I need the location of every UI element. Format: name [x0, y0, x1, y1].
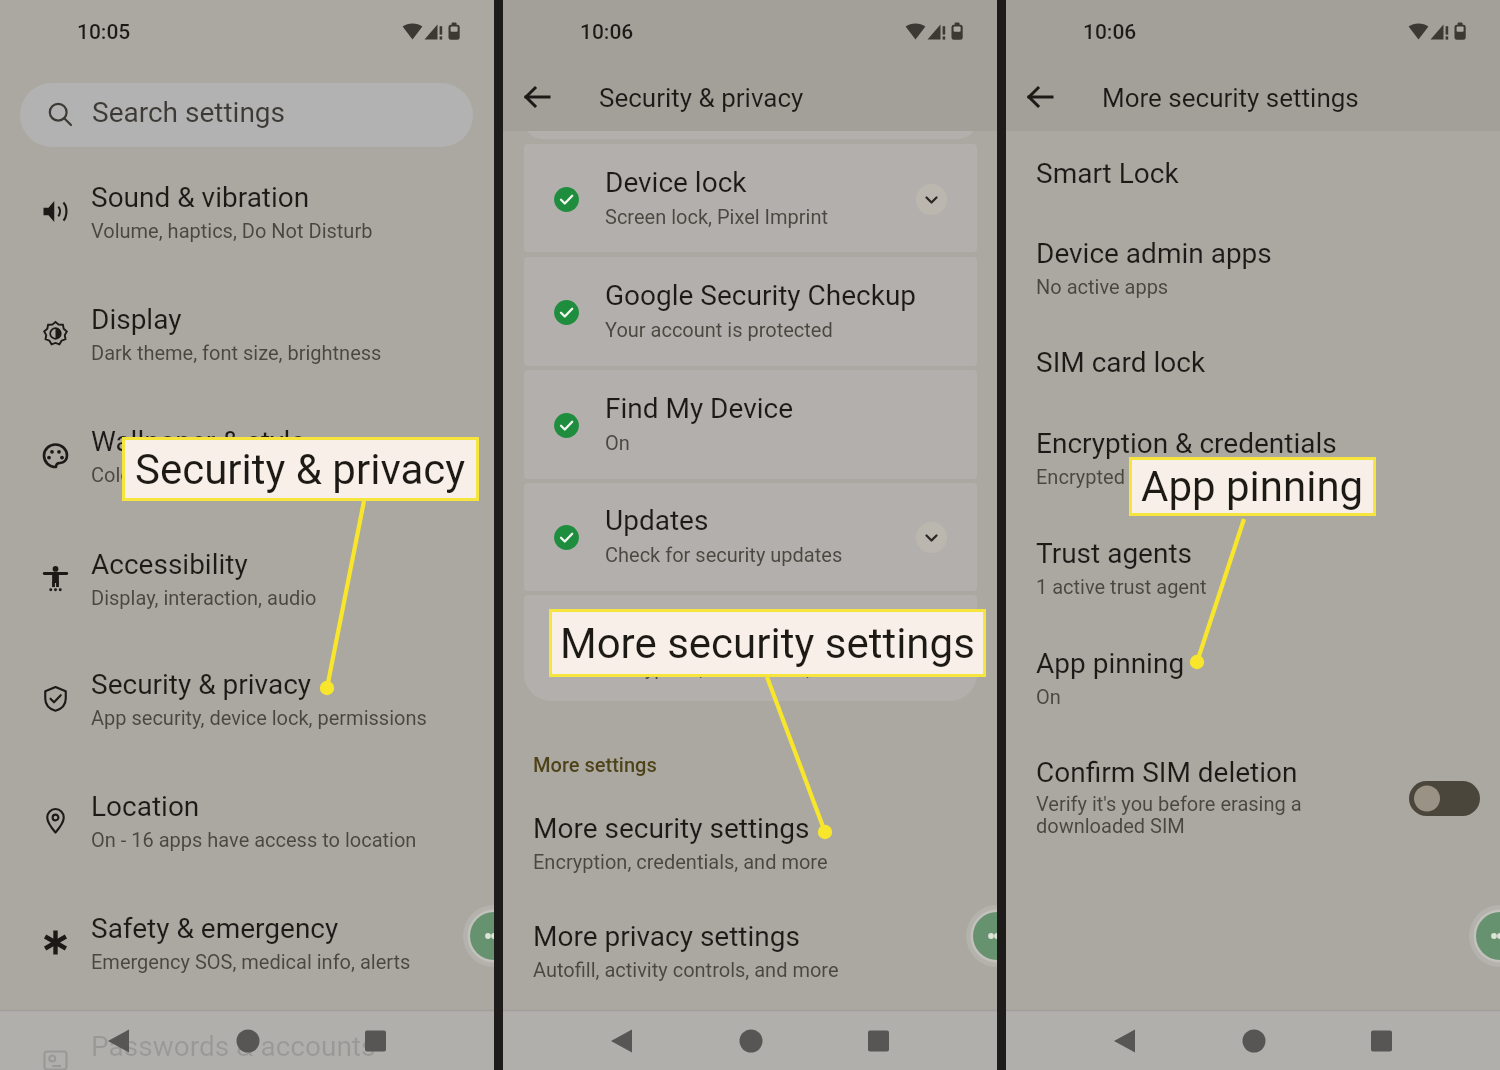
staticText: SIM card lock — [1036, 346, 1206, 379]
button[interactable]: Find My Device — [524, 370, 977, 479]
staticText: More security settings — [1102, 83, 1359, 113]
staticText: Confirm SIM deletion — [1036, 756, 1298, 789]
button[interactable]: Expand — [916, 522, 947, 553]
staticText: Encrypted — [1036, 465, 1125, 488]
staticText: Passwords & accounts — [91, 1030, 376, 1063]
staticText: Check for security updates — [605, 543, 843, 566]
button[interactable]: Device lock — [524, 144, 977, 252]
button[interactable]: Recent apps — [351, 1017, 399, 1065]
staticText: Security & privacy — [91, 668, 312, 701]
staticText: Encryption & credentials — [1036, 427, 1337, 460]
button[interactable]: Home — [224, 1017, 272, 1065]
button[interactable]: More privacy settings — [503, 894, 997, 1003]
staticText: Smart Lock — [1036, 157, 1179, 190]
button[interactable]: Recent apps — [1357, 1017, 1405, 1065]
staticText: Colors, themed icons, app grid — [91, 463, 360, 486]
button[interactable]: App pinning — [1006, 621, 1500, 726]
staticText: Your account is protected — [605, 318, 833, 341]
button[interactable]: Home — [727, 1017, 775, 1065]
button[interactable]: Trust agents — [1006, 511, 1500, 616]
staticText: Device lock — [605, 166, 747, 199]
button[interactable]: Accessibility — [0, 522, 494, 634]
button[interactable]: Display — [0, 277, 494, 389]
staticText: App pinning — [1036, 647, 1185, 680]
staticText: Security & privacy — [135, 445, 466, 494]
button[interactable]: More options — [460, 902, 494, 970]
staticText: Google Security Checkup — [605, 279, 917, 312]
staticText: 10:05 — [77, 20, 131, 45]
staticText: Sound & vibration — [91, 181, 310, 214]
button[interactable]: Sound & vibration — [0, 155, 494, 267]
staticText: Accessibility — [91, 548, 248, 581]
staticText: Display — [91, 303, 182, 336]
button[interactable]: Passwords & accounts — [0, 1004, 494, 1070]
button[interactable]: Wallpaper & style — [0, 399, 494, 511]
staticText: Encryption, credentials, and more — [533, 850, 828, 873]
staticText: Search settings — [92, 96, 286, 129]
button[interactable]: Updates — [524, 483, 977, 591]
button[interactable]: Back — [94, 1017, 142, 1065]
button[interactable]: Back — [1100, 1017, 1148, 1065]
staticText: Verify it's you before erasing a downloa… — [1036, 792, 1302, 838]
staticText: Location — [91, 790, 200, 823]
staticText: Screen lock, Pixel Imprint — [605, 205, 828, 228]
staticText: Device admin apps — [1036, 237, 1272, 270]
staticText: On — [1036, 685, 1061, 708]
staticText: Safety & emergency — [91, 912, 339, 945]
button[interactable]: Expand — [916, 184, 947, 215]
button[interactable]: Navigate up — [516, 74, 562, 120]
staticText: Display, interaction, audio — [91, 586, 317, 609]
staticText: Emergency SOS, medical info, alerts — [91, 950, 411, 973]
staticText: App security, device lock, permissions — [91, 706, 427, 729]
button[interactable]: Device admin apps — [1006, 211, 1500, 316]
staticText: More settings — [533, 753, 657, 776]
staticText: Volume, haptics, Do Not Disturb — [91, 219, 373, 242]
staticText: More privacy settings — [533, 920, 800, 953]
button[interactable]: Location — [0, 764, 494, 876]
staticText: Trust agents — [1036, 537, 1193, 570]
button[interactable]: Google Security Checkup — [524, 257, 977, 366]
staticText: Wallpaper & style — [91, 425, 306, 458]
button[interactable]: Smart Lock — [1006, 131, 1500, 211]
button[interactable]: Confirm SIM deletion — [1006, 729, 1500, 859]
button[interactable]: More options — [963, 902, 997, 970]
button[interactable]: Security & privacy — [0, 642, 494, 754]
staticText: Find My Device — [605, 392, 794, 425]
button[interactable]: Safety & emergency — [0, 886, 494, 998]
button[interactable]: Encryption & credentials — [1006, 401, 1500, 506]
button[interactable]: Home — [1230, 1017, 1278, 1065]
staticText: On - 16 apps have access to location — [91, 828, 417, 851]
button[interactable]: More security settings — [503, 786, 997, 895]
button[interactable]: Navigate up — [1019, 74, 1065, 120]
button[interactable]: Confirm SIM deletion — [1409, 781, 1480, 816]
staticText: Security & privacy — [599, 83, 804, 113]
staticText: App pinning — [1141, 462, 1364, 511]
staticText: More security settings — [560, 619, 975, 668]
staticText: On — [605, 431, 630, 454]
button[interactable]: Back — [597, 1017, 645, 1065]
staticText: 10:06 — [580, 20, 634, 45]
staticText: More security settings — [533, 812, 810, 845]
staticText: Encryption, credentials, and more — [605, 656, 900, 679]
staticText: Updates — [605, 504, 709, 537]
staticText: 1 active trust agent — [1036, 575, 1207, 598]
button[interactable]: Recent apps — [854, 1017, 902, 1065]
staticText: More security settings — [605, 617, 882, 650]
button[interactable]: Search settings — [20, 83, 473, 147]
button[interactable]: More options — [1466, 902, 1500, 970]
staticText: 10:06 — [1083, 20, 1137, 45]
button[interactable]: SIM card lock — [1006, 320, 1500, 400]
button[interactable]: More security settings — [524, 595, 977, 701]
staticText: Dark theme, font size, brightness — [91, 341, 382, 364]
staticText: Autofill, activity controls, and more — [533, 958, 839, 981]
staticText: No active apps — [1036, 275, 1169, 298]
